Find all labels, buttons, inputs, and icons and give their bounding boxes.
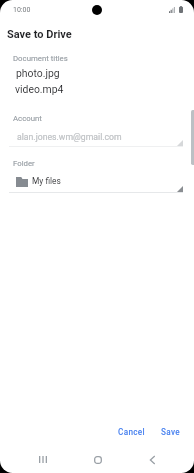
staticText: Save to Drive (7, 28, 72, 41)
button[interactable]: alan.jones.wm@gmail.com (0, 128, 194, 150)
button[interactable]: Cancel (113, 423, 150, 441)
staticText: 10:00 (13, 6, 31, 14)
staticText: alan.jones.wm@gmail.com (17, 132, 122, 142)
button[interactable]: Back (134, 446, 170, 473)
staticText: Cancel (118, 427, 145, 437)
staticText: Save (161, 427, 180, 437)
staticText: photo.jpg (16, 67, 60, 79)
button[interactable]: Home (80, 446, 116, 473)
staticText: My files (32, 176, 61, 186)
button[interactable]: My files (0, 172, 194, 196)
staticText: Account (13, 114, 42, 123)
staticText: video.mp4 (15, 83, 64, 95)
staticText: Document titles (13, 54, 68, 63)
button[interactable]: Recents (25, 446, 61, 473)
staticText: Folder (13, 159, 35, 168)
button[interactable]: Save (156, 423, 185, 441)
